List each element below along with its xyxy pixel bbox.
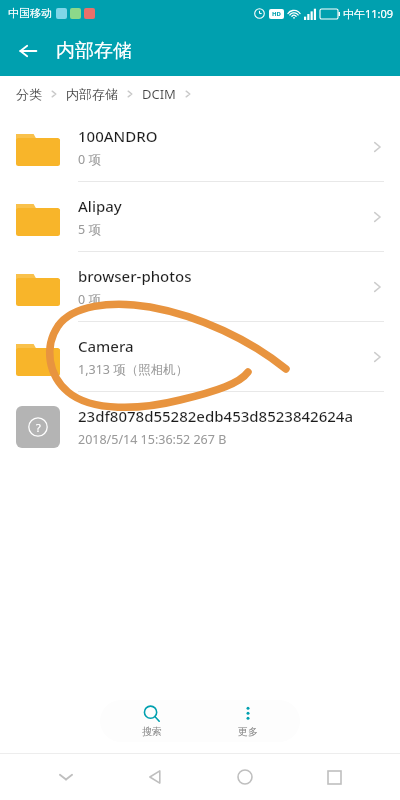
staticText: 1,313 项（照相机） — [78, 361, 189, 378]
button[interactable]: 内部存储 — [66, 86, 118, 102]
staticText: Alipay — [78, 196, 122, 216]
button[interactable]: 返回 — [8, 31, 48, 71]
staticText: 0 项 — [78, 291, 101, 308]
button[interactable]: 返回 — [132, 754, 178, 800]
button[interactable]: Alipay — [0, 182, 400, 252]
staticText: 2018/5/14 15:36:52 267 B — [78, 431, 227, 448]
staticText: ? — [36, 420, 41, 435]
staticText: 内部存储 — [66, 86, 118, 102]
button[interactable]: 100ANDRO — [0, 112, 400, 182]
staticText: 中午11:09 — [343, 6, 394, 21]
staticText: 内部存储 — [56, 39, 132, 63]
staticText: 搜索 — [142, 725, 162, 738]
staticText: 23df8078d55282edb453d8523842624a — [78, 406, 353, 426]
staticText: 0 项 — [78, 151, 101, 168]
button[interactable]: 分类 — [16, 86, 42, 102]
staticText: 100ANDRO — [78, 126, 158, 146]
staticText: 中国移动 — [8, 6, 52, 20]
staticText: 更多 — [238, 725, 258, 738]
button[interactable]: 搜索 — [107, 702, 197, 741]
staticText: 分类 — [16, 86, 42, 102]
button[interactable]: 最近任务 — [311, 754, 357, 800]
button[interactable]: 收起 — [43, 754, 89, 800]
staticText: HD — [272, 10, 281, 18]
button[interactable]: browser-photos — [0, 252, 400, 322]
staticText: 5 项 — [78, 221, 101, 238]
button[interactable]: DCIM — [142, 85, 176, 103]
staticText: Camera — [78, 336, 134, 356]
button[interactable]: Camera — [0, 322, 400, 392]
button[interactable]: ? — [0, 392, 400, 462]
staticText: DCIM — [142, 85, 176, 103]
button[interactable]: 主屏幕 — [222, 754, 268, 800]
button[interactable]: 更多 — [203, 702, 293, 741]
staticText: browser-photos — [78, 266, 192, 286]
